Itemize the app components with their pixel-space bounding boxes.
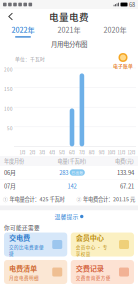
- staticText: 会员中心 · 专享权益: [76, 244, 108, 257]
- staticText: 12月: [127, 149, 135, 155]
- staticText: 06月: [4, 168, 16, 177]
- staticText: 2022年: [11, 24, 34, 35]
- staticText: 67.21: [120, 182, 134, 190]
- staticText: 150: [4, 86, 13, 92]
- staticText: 142: [67, 182, 76, 190]
- staticText: 2020年: [103, 24, 126, 35]
- staticText: 4月: [49, 149, 55, 155]
- button[interactable]: 2020年: [92, 24, 138, 38]
- staticText: 9月: [99, 149, 105, 155]
- staticText: 交费记录: [76, 263, 104, 273]
- staticText: 133.94: [117, 168, 134, 177]
- staticText: 11月: [117, 149, 125, 155]
- staticText: 68: [129, 0, 135, 8]
- staticText: 50: [7, 125, 13, 132]
- staticText: 3月: [39, 149, 45, 155]
- staticText: 1月: [19, 149, 25, 155]
- button[interactable]: 07月: [0, 179, 138, 192]
- staticText: 2021年: [57, 24, 80, 35]
- staticText: 电费(元): [115, 157, 134, 165]
- staticText: 电子账单: [113, 62, 133, 69]
- button[interactable]: 交费记录: [71, 260, 134, 284]
- staticText: 你可能还需要: [4, 223, 40, 231]
- staticText: 月用电分布图: [51, 39, 87, 49]
- button[interactable]: 电费清单: [4, 260, 67, 284]
- staticText: 283: [59, 168, 68, 177]
- button[interactable]: 2022年: [0, 24, 46, 38]
- staticText: 单位：千瓦时: [15, 55, 45, 62]
- staticText: 温馨提示: [54, 212, 78, 221]
- staticText: 年度月份: [4, 157, 24, 165]
- staticText: 电费清单: [9, 263, 37, 273]
- staticText: ①: [3, 195, 8, 202]
- staticText: 7月: [79, 149, 85, 155]
- staticText: 10月: [108, 149, 116, 155]
- button[interactable]: 06月: [0, 166, 138, 179]
- staticText: ②: [76, 195, 81, 202]
- staticText: 5月: [59, 149, 65, 155]
- staticText: 交电费: [9, 232, 30, 242]
- staticText: 年电量合计：425 千瓦时: [9, 195, 64, 203]
- button[interactable]: 返回: [3, 9, 19, 24]
- staticText: 月度电费明细: [9, 274, 39, 281]
- button[interactable]: 2021年: [46, 24, 92, 38]
- staticText: 8月: [89, 149, 95, 155]
- staticText: 年电费合计：201.15 元: [83, 195, 135, 203]
- staticText: 会员中心: [76, 232, 104, 242]
- staticText: 交的比电费更便捷: [9, 244, 44, 257]
- button[interactable]: 温馨提示: [0, 210, 138, 222]
- button[interactable]: 会员中心: [71, 232, 134, 256]
- button[interactable]: 交电费: [4, 232, 67, 256]
- staticText: 07月: [4, 182, 16, 190]
- staticText: 100: [4, 105, 13, 112]
- staticText: 200: [4, 66, 13, 73]
- staticText: 2月: [29, 149, 35, 155]
- staticText: 6月: [69, 149, 75, 155]
- staticText: 电量电费: [49, 9, 89, 23]
- staticText: 电量(千瓦时): [57, 157, 86, 165]
- staticText: 已出账: [71, 170, 83, 175]
- staticText: 交费查询更方便: [76, 274, 111, 281]
